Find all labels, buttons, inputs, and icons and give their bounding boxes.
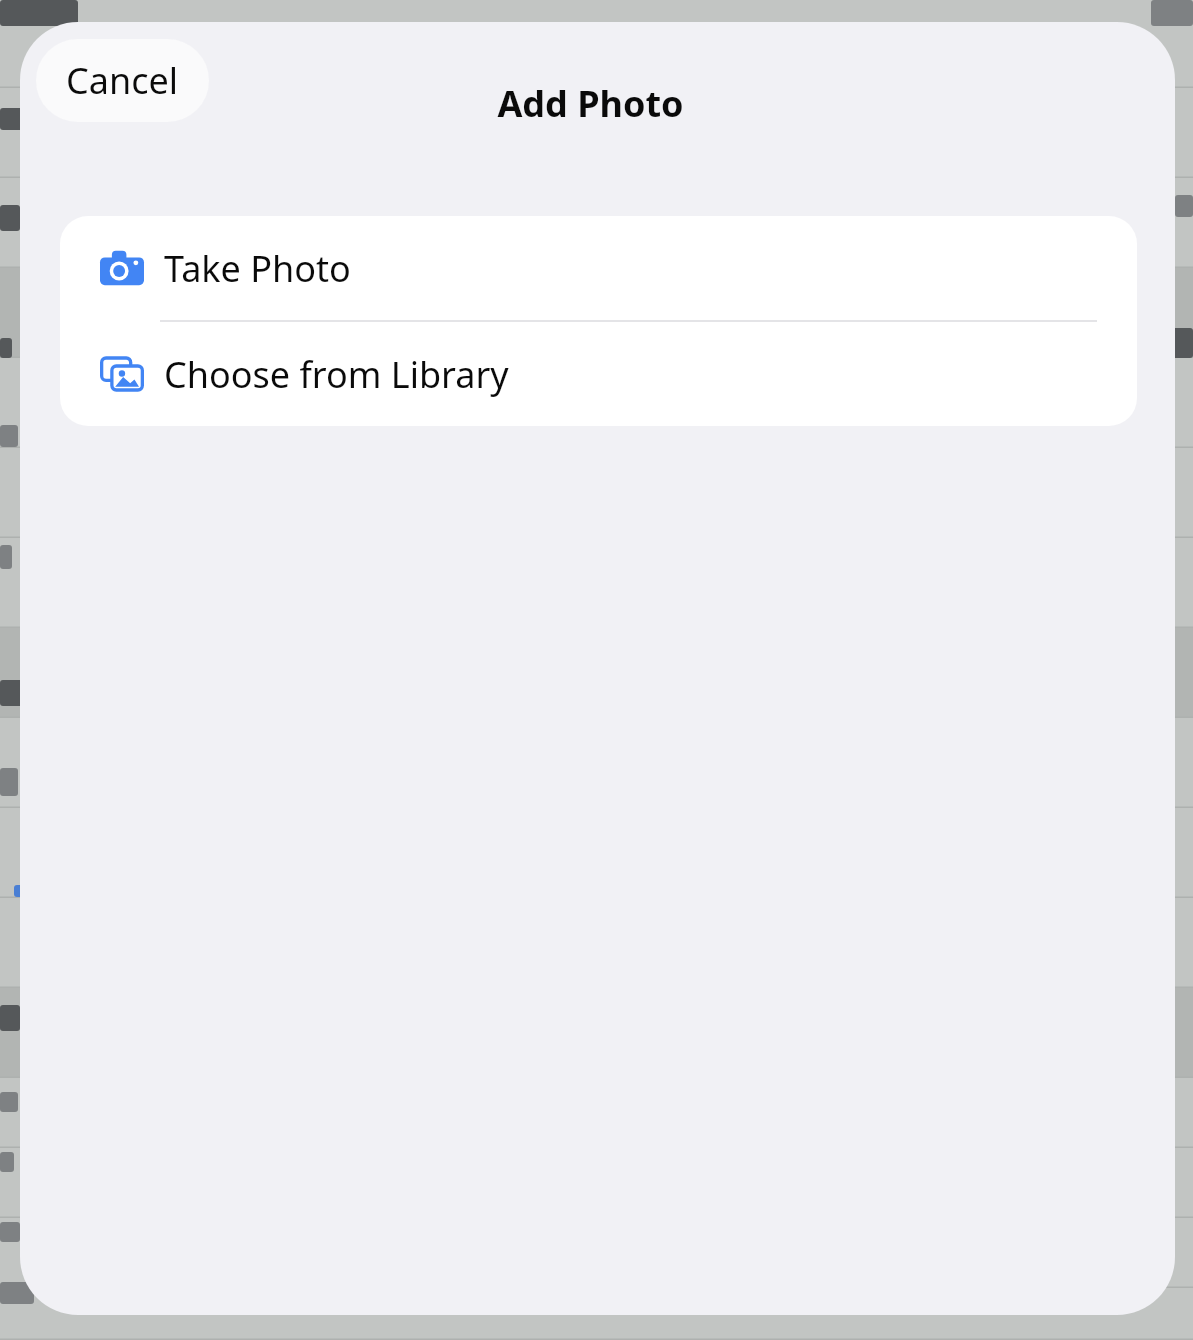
staticText: Add Photo: [497, 79, 684, 128]
staticText: Cancel: [66, 56, 179, 105]
button[interactable]: Cancel: [36, 39, 209, 122]
staticText: Choose from Library: [164, 350, 509, 399]
other: Choose from Library: [100, 354, 144, 394]
button[interactable]: Take Photo: [60, 216, 1137, 320]
other: Take Photo: [100, 248, 144, 288]
button[interactable]: Choose from Library: [60, 322, 1137, 426]
staticText: Take Photo: [164, 244, 351, 293]
